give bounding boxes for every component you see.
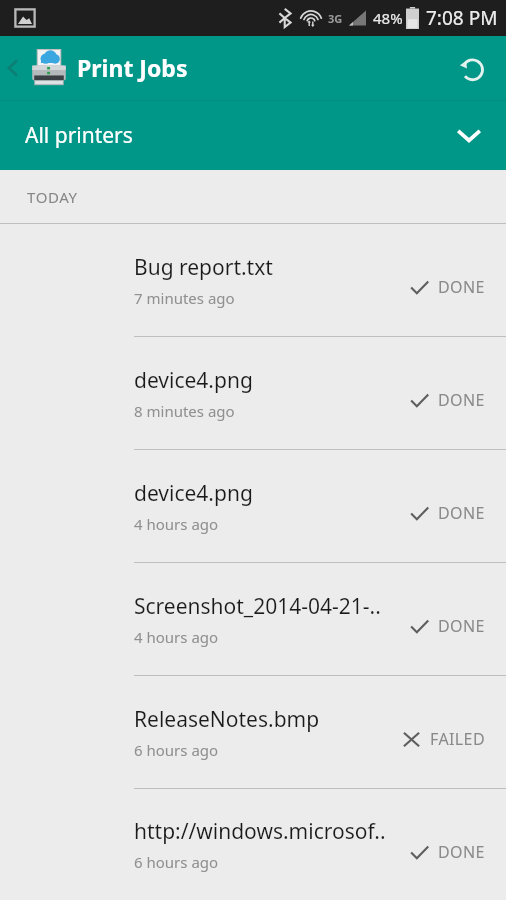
button[interactable]: http://windows.microsof.. xyxy=(0,789,506,900)
button[interactable]: device4.png xyxy=(0,450,506,562)
staticText: 48% xyxy=(373,8,403,28)
staticText: Screenshot_2014-04-21-.. xyxy=(134,592,381,621)
staticText: ReleaseNotes.bmp xyxy=(134,705,320,734)
staticText: TODAY xyxy=(27,187,78,207)
button[interactable]: All printers xyxy=(0,100,506,170)
staticText: device4.png xyxy=(134,366,253,395)
staticText: DONE xyxy=(438,389,485,411)
button[interactable]: device4.png xyxy=(0,337,506,449)
staticText: All printers xyxy=(25,121,133,150)
button[interactable]: Bug report.txt xyxy=(0,224,506,336)
staticText: DONE xyxy=(438,615,485,637)
staticText: device4.png xyxy=(134,479,253,508)
button[interactable]: Back xyxy=(0,55,26,81)
staticText: 7:08 PM xyxy=(426,5,498,31)
staticText: DONE xyxy=(438,276,485,298)
staticText: FAILED xyxy=(430,728,485,750)
staticText: DONE xyxy=(438,841,485,863)
staticText: 3G xyxy=(328,11,343,26)
button[interactable]: Refresh xyxy=(452,48,492,88)
staticText: 6 hours ago xyxy=(134,852,219,872)
staticText: Print Jobs xyxy=(77,52,188,83)
staticText: 7 minutes ago xyxy=(134,288,235,308)
staticText: Bug report.txt xyxy=(134,253,273,282)
staticText: 4 hours ago xyxy=(134,627,219,647)
staticText: 8 minutes ago xyxy=(134,401,235,421)
staticText: 6 hours ago xyxy=(134,740,219,760)
button[interactable]: Screenshot_2014-04-21-.. xyxy=(0,563,506,675)
staticText: http://windows.microsof.. xyxy=(134,817,386,846)
button[interactable]: ReleaseNotes.bmp xyxy=(0,676,506,788)
staticText: DONE xyxy=(438,502,485,524)
staticText: 4 hours ago xyxy=(134,514,219,534)
